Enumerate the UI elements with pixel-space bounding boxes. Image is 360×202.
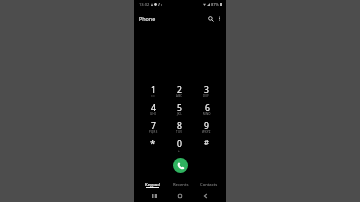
button[interactable]: 3 bbox=[193, 84, 220, 102]
staticText: * bbox=[150, 137, 156, 150]
button[interactable]: # bbox=[193, 138, 220, 156]
staticText: oo bbox=[151, 94, 156, 98]
staticText: + bbox=[178, 149, 181, 153]
staticText: 9 bbox=[204, 120, 209, 132]
staticText: 3 bbox=[204, 84, 209, 96]
staticText: 6 bbox=[205, 102, 210, 114]
button[interactable]: 2 bbox=[166, 84, 193, 102]
staticText: WXYZ bbox=[202, 130, 211, 134]
staticText: 87% bbox=[211, 2, 219, 7]
staticText: DEF bbox=[203, 94, 210, 98]
staticText: 5 bbox=[177, 102, 182, 114]
button[interactable]: Search bbox=[206, 14, 215, 23]
staticText: 2 bbox=[177, 84, 182, 96]
button[interactable]: More options bbox=[215, 14, 223, 22]
staticText: # bbox=[204, 137, 209, 147]
staticText: ABC bbox=[176, 94, 183, 98]
staticText: JKL bbox=[177, 112, 182, 116]
button[interactable]: * bbox=[140, 138, 166, 156]
button[interactable]: Contacts bbox=[195, 182, 223, 192]
staticText: 7 bbox=[151, 120, 156, 132]
staticText: 4 bbox=[151, 102, 156, 114]
button[interactable]: Recent apps bbox=[140, 191, 166, 200]
staticText: 1 bbox=[151, 84, 156, 96]
staticText: Contacts bbox=[200, 182, 218, 188]
staticText: 8 bbox=[177, 120, 182, 132]
button[interactable]: Keypad bbox=[138, 182, 167, 192]
button[interactable]: 6 bbox=[193, 102, 220, 120]
staticText: MNO bbox=[203, 112, 211, 116]
staticText: 13:02 bbox=[139, 2, 150, 7]
button[interactable]: Recents bbox=[167, 182, 195, 192]
staticText: Recents bbox=[173, 182, 189, 188]
button[interactable]: Call bbox=[173, 158, 188, 173]
button[interactable]: 8 bbox=[166, 120, 193, 138]
staticText: 0 bbox=[177, 138, 182, 150]
button[interactable]: 7 bbox=[140, 120, 166, 138]
staticText: PQRS bbox=[149, 130, 158, 134]
button[interactable]: 5 bbox=[166, 102, 193, 120]
button[interactable]: 4 bbox=[140, 102, 166, 120]
button[interactable]: 0 bbox=[166, 138, 193, 156]
button[interactable]: 1 bbox=[140, 84, 166, 102]
button[interactable]: Home bbox=[166, 191, 193, 200]
staticText: Keypad bbox=[145, 182, 160, 188]
staticText: TUV bbox=[176, 130, 183, 134]
staticText: Phone bbox=[139, 15, 156, 22]
button[interactable]: Back bbox=[193, 191, 220, 200]
staticText: GHI bbox=[150, 112, 157, 116]
button[interactable]: 9 bbox=[193, 120, 220, 138]
